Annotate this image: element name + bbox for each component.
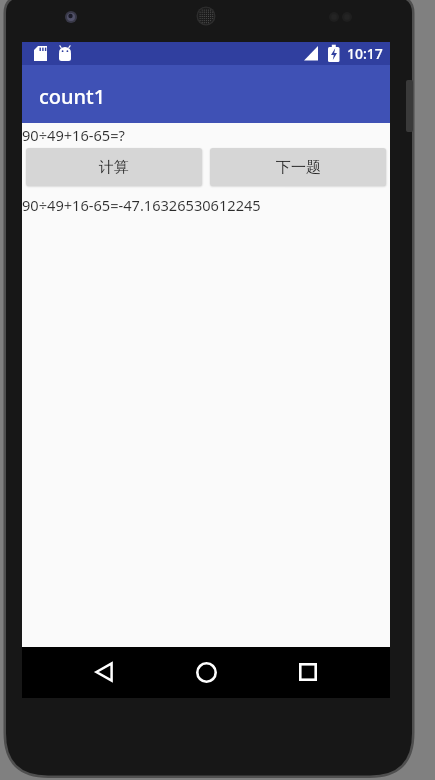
- staticText: count1: [39, 83, 106, 110]
- staticText: 90÷49+16-65=?: [22, 125, 125, 145]
- button[interactable]: Recent apps: [284, 648, 332, 696]
- button[interactable]: 计算: [26, 148, 202, 186]
- staticText: 下一题: [276, 158, 321, 177]
- button[interactable]: 下一题: [210, 148, 386, 186]
- staticText: 计算: [99, 158, 129, 177]
- button[interactable]: Back: [80, 648, 128, 696]
- button[interactable]: count1: [22, 65, 390, 123]
- button[interactable]: Home: [182, 648, 230, 696]
- staticText: 90÷49+16-65=-47.16326530612245: [22, 195, 261, 215]
- staticText: 10:17: [347, 44, 383, 63]
